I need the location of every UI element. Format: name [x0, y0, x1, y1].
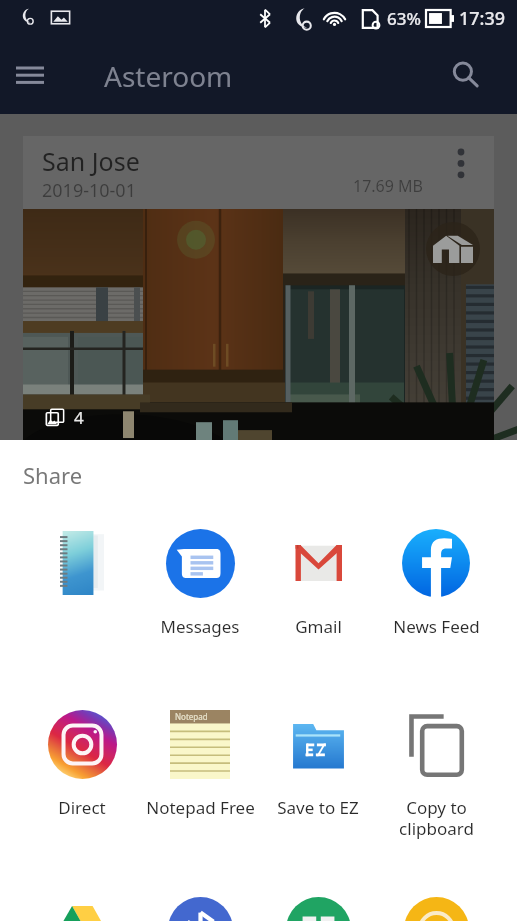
button[interactable]: Notebook — [22, 528, 141, 598]
button[interactable]: 3D home tour — [426, 222, 480, 276]
staticText: News Feed — [393, 615, 480, 638]
staticText: 63% — [387, 7, 421, 30]
staticText: San Jose — [42, 144, 140, 178]
button[interactable]: Direct — [22, 709, 141, 819]
staticText: Direct — [58, 796, 106, 819]
button[interactable]: News Feed — [377, 528, 495, 638]
staticText: Notepad Free — [146, 796, 255, 819]
button[interactable]: More options — [440, 142, 482, 184]
button[interactable]: Save to EZ — [259, 709, 377, 819]
button[interactable]: Notepad — [141, 709, 259, 819]
button[interactable]: San Jose — [23, 136, 494, 444]
staticText: 17:39 — [459, 6, 506, 31]
button[interactable]: Yellow — [377, 894, 495, 921]
staticText: Asteroom — [104, 57, 233, 95]
button[interactable]: Sheets — [259, 894, 377, 921]
staticText: Gmail — [295, 615, 342, 638]
button[interactable]: Copy to clipboard — [377, 709, 495, 840]
staticText: Copy to clipboard — [399, 796, 474, 840]
staticText: 2019-10-01 — [42, 178, 136, 203]
button[interactable]: Messages — [141, 528, 259, 638]
button[interactable]: Open navigation menu — [6, 51, 54, 99]
staticText: Save to EZ — [277, 796, 359, 819]
staticText: Messages — [160, 615, 240, 638]
staticText: 17.69 MB — [353, 175, 423, 197]
button[interactable]: BluetoothShare — [141, 894, 259, 921]
staticText: 4 — [74, 406, 84, 429]
button[interactable]: Search — [442, 51, 490, 99]
staticText: Notepad — [175, 711, 208, 722]
button[interactable]: Gmail — [259, 528, 377, 638]
staticText: Share — [23, 460, 83, 490]
button[interactable]: Drive — [22, 894, 141, 921]
